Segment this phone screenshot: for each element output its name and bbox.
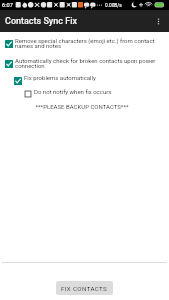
button[interactable] (5, 58, 161, 70)
button[interactable] (5, 38, 161, 50)
staticText: 6:07 (2, 2, 13, 9)
staticText: Fix problems automatically (24, 74, 164, 81)
staticText: Remove special characters (emoji etc.) f… (15, 37, 161, 50)
button[interactable]: More options (147, 10, 169, 32)
staticText: Do not notify when fix occurs (34, 88, 164, 95)
button[interactable] (14, 75, 164, 87)
button[interactable]: FIX CONTACTS (56, 281, 113, 295)
staticText: Contacts Sync Fix (5, 16, 77, 27)
button[interactable] (24, 88, 164, 100)
staticText: ***PLEASE BACKUP CONTACTS*** (0, 103, 164, 110)
staticText: Automatically check for broken contacts … (15, 57, 161, 70)
staticText: 0.00B/s (105, 3, 122, 9)
staticText: FIX CONTACTS (61, 285, 108, 292)
